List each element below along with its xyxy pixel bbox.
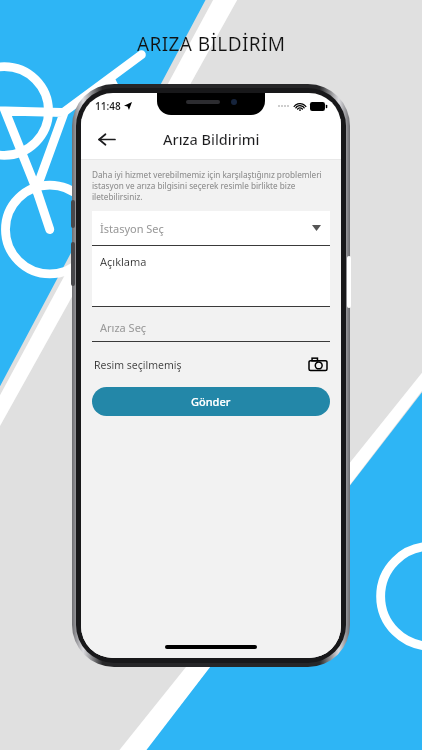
staticText: ARIZA BİLDİRİM bbox=[137, 31, 286, 57]
button[interactable]: Açıklama bbox=[92, 246, 330, 306]
staticText: Daha iyi hizmet verebilmemiz için karşıl… bbox=[92, 169, 330, 202]
button[interactable]: Arıza Seç bbox=[92, 313, 330, 341]
button[interactable]: Geri bbox=[89, 122, 123, 156]
button[interactable]: Gönder bbox=[92, 387, 330, 416]
staticText: Arıza Bildirimi bbox=[163, 129, 260, 149]
button[interactable]: Resim seçilmemiş bbox=[92, 352, 330, 378]
button[interactable]: Resim seç bbox=[306, 353, 330, 377]
staticText: 11:48 bbox=[95, 99, 121, 113]
staticText: Arıza Seç bbox=[100, 320, 147, 335]
button[interactable]: İstasyon Seç bbox=[92, 211, 330, 245]
staticText: Resim seçilmemiş bbox=[94, 358, 182, 372]
staticText: Gönder bbox=[191, 394, 231, 409]
staticText: İstasyon Seç bbox=[100, 221, 164, 236]
staticText: Açıklama bbox=[100, 254, 147, 269]
